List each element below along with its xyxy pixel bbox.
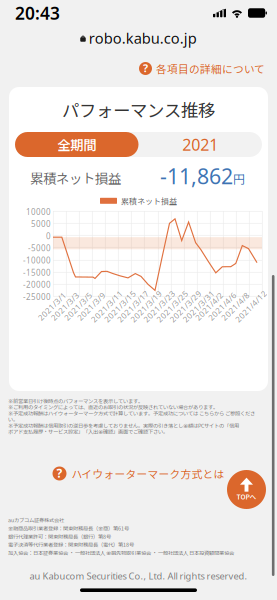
staticText: -25000 — [23, 292, 51, 302]
staticText: 2021/3/11 — [86, 301, 127, 312]
staticText: ポアド支払履歴・サービス設定」「入出金確認」画面でご確認下さい。 — [8, 428, 168, 435]
staticText: 0 — [46, 231, 51, 241]
staticText: ? — [56, 465, 62, 481]
staticText: 2021/3/17 — [113, 301, 154, 312]
staticText: 2021/3/3 — [47, 301, 83, 312]
staticText: 2021/3/23 — [139, 301, 180, 312]
staticText: 2021/4/2 — [191, 301, 227, 312]
staticText: 20:43 — [15, 1, 60, 24]
staticText: 2021/3/1 — [34, 301, 70, 312]
staticText: 2021/3/5 — [60, 301, 96, 312]
staticText: 10000 — [26, 206, 51, 217]
staticText: -11,862 — [160, 162, 233, 190]
staticText: 2021/3/19 — [126, 301, 167, 312]
staticText: ※前営業日引け後時点のパフォーマンスを表示しています。 — [8, 397, 143, 405]
staticText: 円 — [233, 170, 245, 187]
button[interactable]: ? — [0, 50, 277, 87]
staticText: 2021/3/25 — [152, 301, 193, 312]
staticText: 金融商品取引業者登録：関東財務局長（金商）第61号 — [8, 524, 129, 532]
button[interactable]: ページ上部へ戻る — [227, 470, 266, 509]
staticText: 2021/4/8 — [217, 301, 253, 312]
staticText: 累積ネット損益 — [121, 195, 177, 207]
staticText: ? — [143, 61, 148, 75]
staticText: 5000 — [31, 219, 51, 229]
staticText: 加入協会：日本証券業協会 ・ 一般社団法人 金融先物取引業協会 ・ 一般社団法人… — [8, 549, 234, 557]
staticText: au Kabucom Securities Co., Ltd. All righ… — [29, 570, 247, 582]
staticText: い。 — [8, 415, 18, 423]
staticText: 電子決済等代行業者登録：関東財務局長（電代）第18号 — [8, 541, 134, 548]
staticText: auカブコム証券株式会社 — [8, 516, 64, 524]
staticText: robo.kabu.co.jp — [89, 28, 197, 48]
staticText: 2021/4/12 — [230, 301, 271, 312]
staticText: 2021/3/29 — [165, 301, 206, 312]
button[interactable]: 2021 — [138, 132, 262, 157]
staticText: 累積ネット損益 — [30, 168, 121, 188]
button[interactable]: 全期間 — [15, 132, 138, 157]
staticText: -5000 — [28, 243, 51, 253]
staticText: ※ご利用のタイミングによっては、直近のお取引の状況が反映されていない場合がありま… — [8, 403, 218, 411]
staticText: 銀行代理業許可：関東財務局長（銀行）第8号 — [8, 532, 111, 540]
staticText: ※予定成功報酬はハイウォーターマーク方式で計算しています。予定成功については こ… — [8, 409, 255, 417]
staticText: ※予定成功報酬は信用取引の逆日歩を考慮しておりません。実際の引き落とし金額はPC… — [8, 421, 239, 429]
staticText: -10000 — [23, 255, 51, 266]
staticText: 2021/3/31 — [178, 301, 219, 312]
staticText: 全期間 — [57, 135, 96, 154]
staticText: -15000 — [23, 267, 51, 278]
staticText: ハイウォーターマーク方式とは — [71, 466, 224, 481]
staticText: 各項目の詳細について — [156, 61, 265, 76]
staticText: 2021 — [182, 134, 218, 155]
staticText: 2021/3/9 — [73, 301, 109, 312]
button[interactable]: ? — [0, 452, 277, 495]
staticText: TOPへ — [236, 492, 256, 501]
staticText: 2021/3/15 — [99, 301, 140, 312]
staticText: パフォーマンス推移 — [62, 97, 215, 122]
staticText: -20000 — [23, 279, 51, 290]
staticText: 2021/4/6 — [204, 301, 240, 312]
